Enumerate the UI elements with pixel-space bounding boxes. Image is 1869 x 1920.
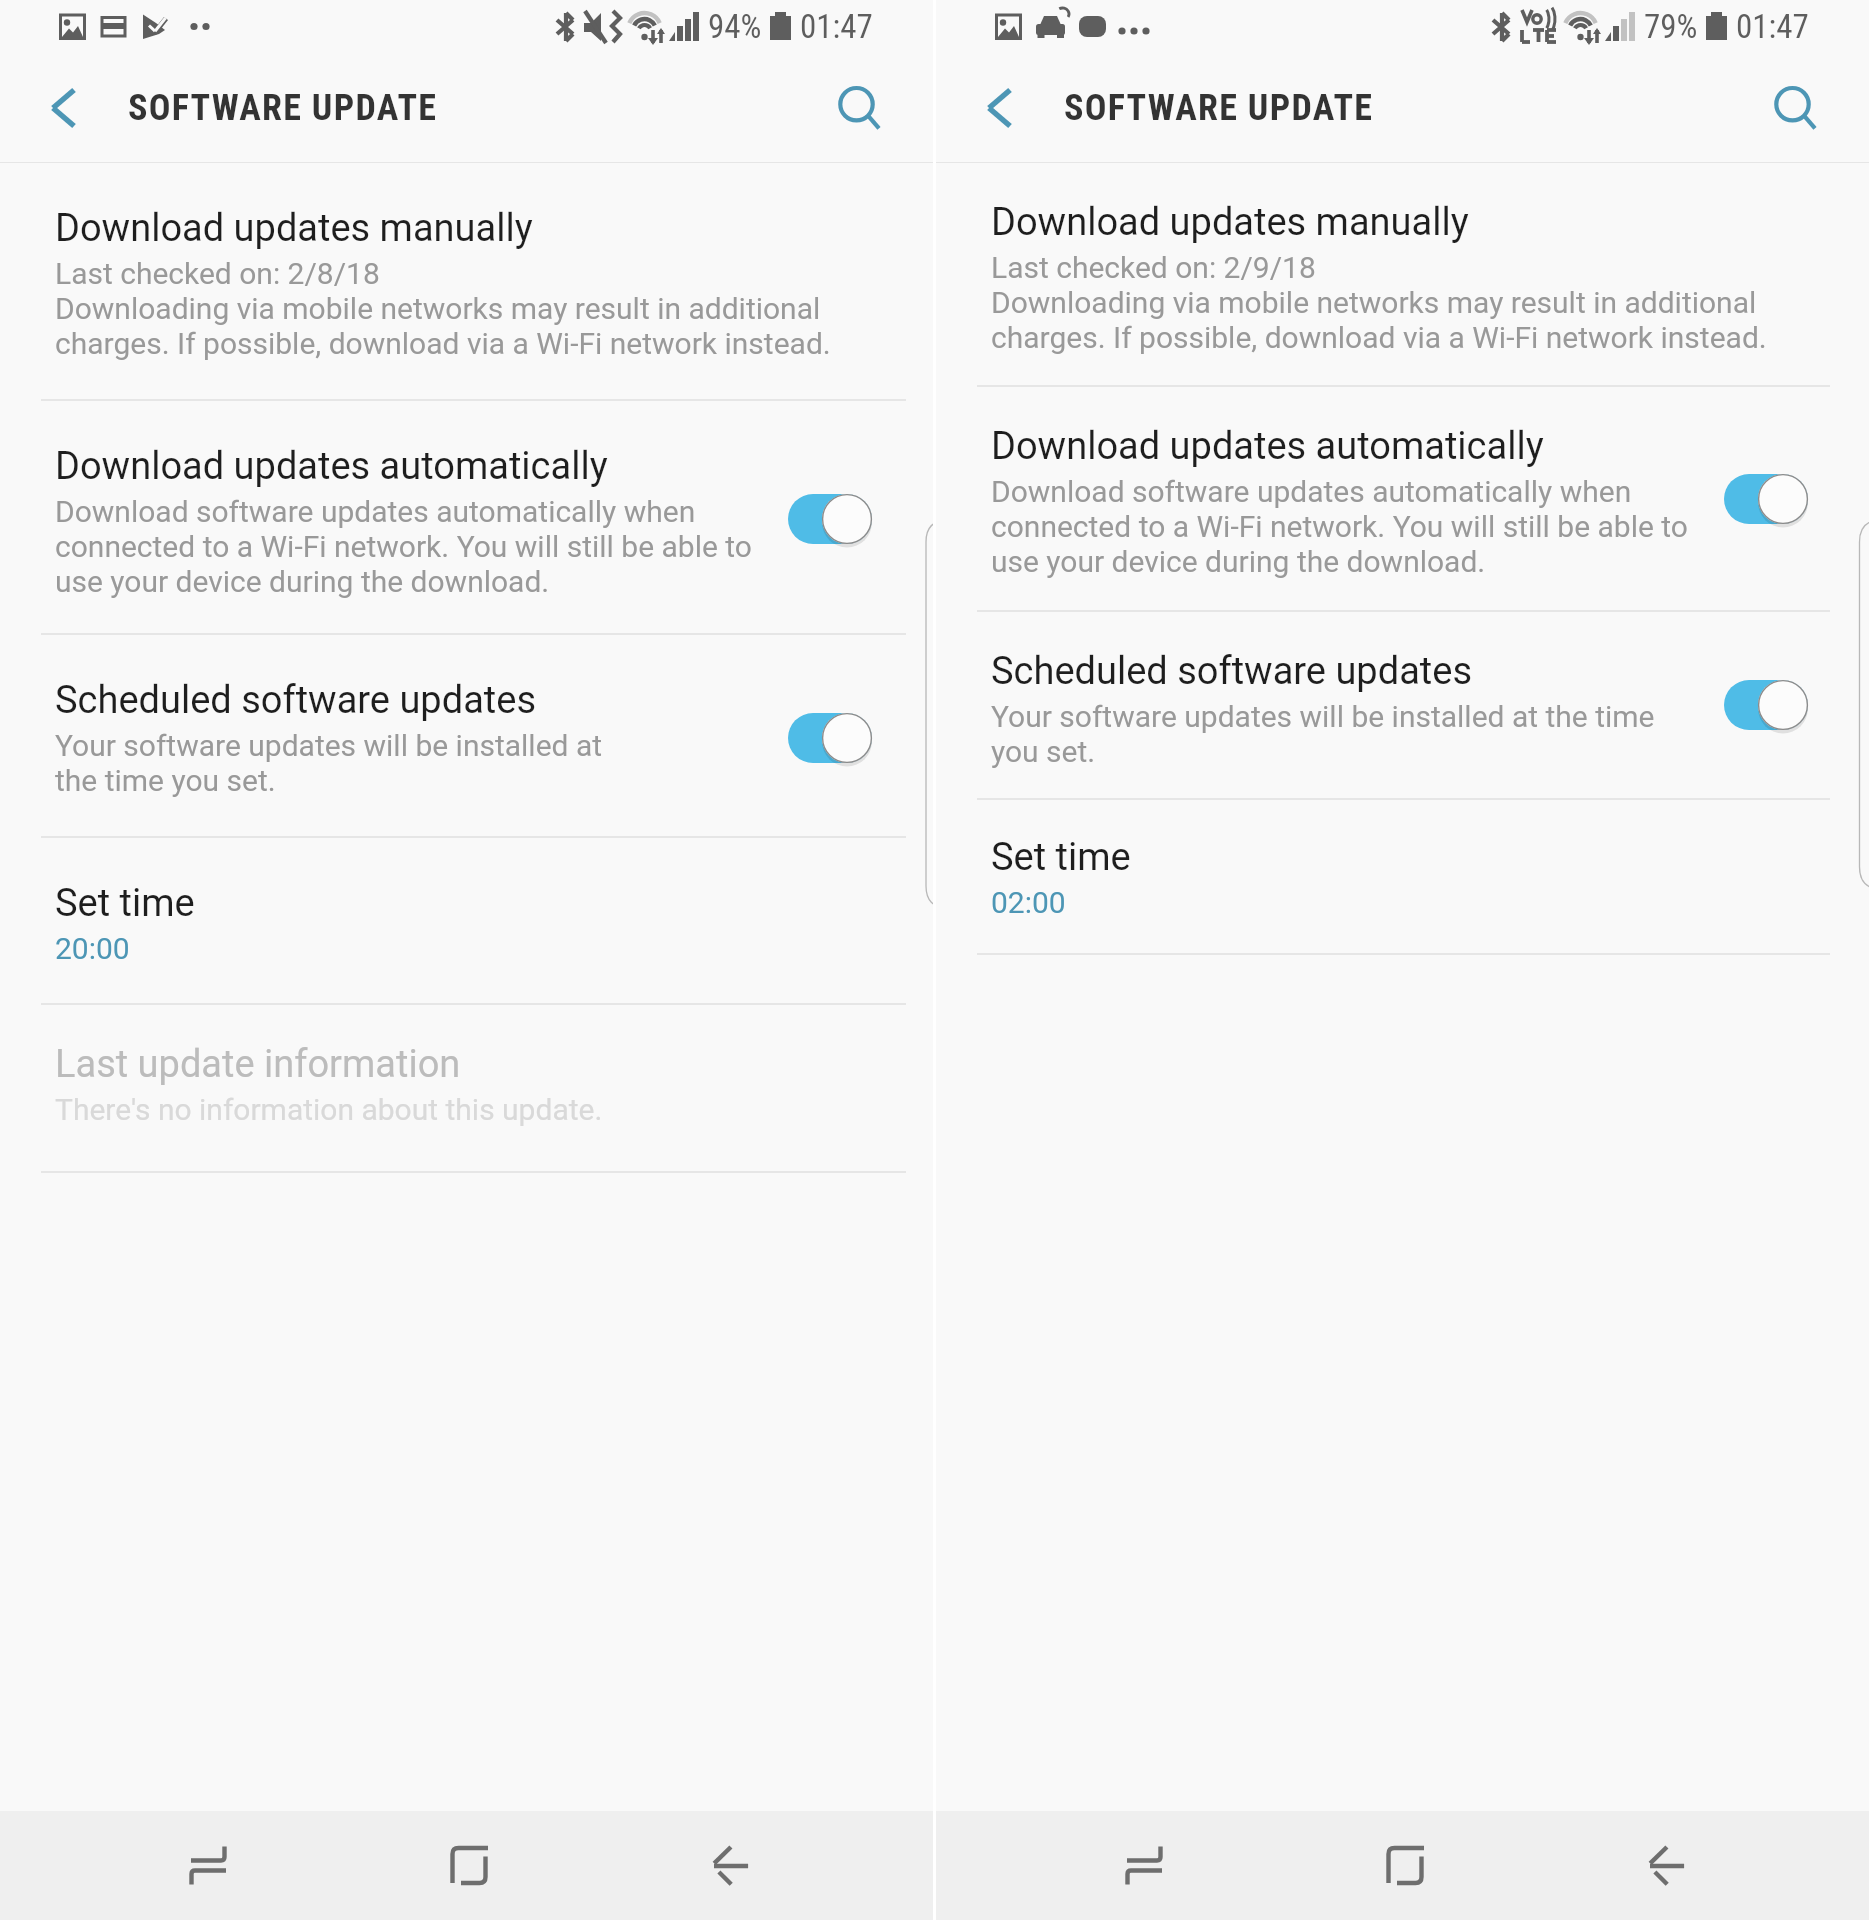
staticText: Download updates automatically <box>55 444 608 489</box>
staticText: 79% <box>1644 7 1698 46</box>
button[interactable]: Navigate up <box>936 56 1048 162</box>
staticText: Download software updates automatically … <box>991 474 1688 579</box>
staticText: Last update information <box>55 1042 461 1087</box>
staticText: 01:47 <box>800 7 873 46</box>
staticText: SOFTWARE UPDATE <box>128 87 438 129</box>
staticText: Your software updates will be installed … <box>991 699 1655 769</box>
staticText: Scheduled software updates <box>55 678 536 723</box>
staticText: 02:00 <box>991 885 1066 920</box>
button[interactable]: Scheduled software updates <box>0 635 933 836</box>
staticText: Download updates manually <box>991 200 1469 245</box>
staticText: Your software updates will be installed … <box>55 728 603 798</box>
button[interactable]: Navigate up <box>0 56 112 162</box>
staticText: Last checked on: 2/9/18 Downloading via … <box>991 250 1767 355</box>
button[interactable]: Home <box>1347 1811 1463 1920</box>
button[interactable]: Back <box>673 1811 789 1920</box>
button[interactable]: Download updates automatically <box>0 401 933 633</box>
button[interactable]: Set time <box>936 800 1869 953</box>
button[interactable]: Toggle <box>1724 474 1808 524</box>
staticText: Set time <box>55 881 195 926</box>
button[interactable]: Back <box>1609 1811 1725 1920</box>
staticText: 94% <box>708 7 762 46</box>
staticText: Download software updates automatically … <box>55 494 752 599</box>
staticText: 01:47 <box>1736 7 1809 46</box>
staticText: 20:00 <box>55 931 130 966</box>
button[interactable]: Toggle <box>1724 680 1808 730</box>
staticText: Scheduled software updates <box>991 649 1472 694</box>
staticText: Set time <box>991 835 1131 880</box>
button[interactable]: Download updates manually <box>0 163 933 399</box>
button[interactable]: Download updates manually <box>936 163 1869 385</box>
staticText: There's no information about this update… <box>55 1092 603 1127</box>
staticText: Download updates manually <box>55 206 533 251</box>
button[interactable]: Recent apps <box>150 1811 266 1920</box>
staticText: SOFTWARE UPDATE <box>1064 87 1374 129</box>
button[interactable]: Scheduled software updates <box>936 612 1869 798</box>
button[interactable]: Recent apps <box>1086 1811 1202 1920</box>
staticText: Download updates automatically <box>991 424 1544 469</box>
button[interactable]: Search <box>821 56 933 162</box>
button[interactable]: Home <box>411 1811 527 1920</box>
staticText: Last checked on: 2/8/18 Downloading via … <box>55 256 831 361</box>
button[interactable]: Last update information <box>0 1005 933 1171</box>
button[interactable]: Set time <box>0 838 933 1003</box>
button[interactable]: Toggle <box>788 713 872 763</box>
button[interactable]: Download updates automatically <box>936 387 1869 610</box>
button[interactable]: Search <box>1757 56 1869 162</box>
button[interactable]: Toggle <box>788 494 872 544</box>
